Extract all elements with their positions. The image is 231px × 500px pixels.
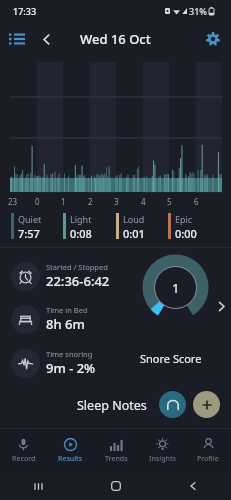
button[interactable]: Results xyxy=(47,429,93,472)
staticText: 17:33 xyxy=(13,5,37,17)
button[interactable]: Profile xyxy=(185,429,231,472)
staticText: 9m - 2% xyxy=(46,359,96,377)
button[interactable]: Started / Stopped xyxy=(11,261,131,291)
staticText: Loud xyxy=(123,213,145,225)
button[interactable]: Snore score 1 xyxy=(142,254,209,321)
staticText: Epic xyxy=(175,213,193,225)
staticText: Record xyxy=(12,454,36,464)
staticText: Quiet xyxy=(18,213,42,225)
staticText: 0 xyxy=(35,196,40,207)
staticText: 8h 6m xyxy=(46,315,85,333)
staticText: Snore Score xyxy=(140,351,202,366)
button[interactable]: Recents xyxy=(0,472,77,500)
button[interactable]: Epic xyxy=(168,213,218,239)
button[interactable]: Settings xyxy=(199,25,227,53)
staticText: 4 xyxy=(141,196,146,207)
staticText: Profile xyxy=(197,454,219,464)
staticText: Started / Stopped xyxy=(46,262,108,272)
button[interactable]: Back xyxy=(33,26,59,52)
button[interactable]: Home xyxy=(77,472,154,500)
staticText: Wed 16 Oct xyxy=(80,30,151,48)
button[interactable]: Snore score details xyxy=(211,296,231,316)
button[interactable]: Time snoring xyxy=(11,348,131,378)
button[interactable]: Record xyxy=(0,429,47,472)
staticText: 1 xyxy=(61,196,66,207)
button[interactable]: Insights xyxy=(139,429,185,472)
staticText: Light xyxy=(70,213,92,225)
staticText: 1 xyxy=(172,279,180,297)
staticText: 23 xyxy=(8,196,18,207)
staticText: Time snoring xyxy=(46,349,93,359)
staticText: 6 xyxy=(194,196,199,207)
staticText: Results xyxy=(58,454,83,464)
staticText: Insights xyxy=(149,454,176,464)
button[interactable]: Add sleep note xyxy=(193,391,220,418)
staticText: 22:36-6:42 xyxy=(46,272,110,290)
button[interactable]: Back xyxy=(154,472,231,500)
button[interactable]: Quiet xyxy=(11,213,61,239)
button[interactable]: Light xyxy=(63,213,113,239)
staticText: Sleep Notes xyxy=(77,397,147,414)
staticText: 3 xyxy=(114,196,119,207)
staticText: 31% xyxy=(189,5,207,17)
staticText: Time in Bed xyxy=(46,305,88,315)
staticText: 0:00 xyxy=(175,226,197,239)
staticText: 0:08 xyxy=(70,226,92,239)
button[interactable]: List of nights xyxy=(3,25,31,53)
button[interactable]: Loud xyxy=(116,213,166,239)
staticText: Trends xyxy=(105,454,128,464)
staticText: 2 xyxy=(88,196,93,207)
button[interactable]: Sleep note xyxy=(159,391,186,418)
staticText: 7:57 xyxy=(18,226,40,239)
staticText: 0:01 xyxy=(123,226,145,239)
button[interactable]: Time in Bed xyxy=(11,304,131,334)
button[interactable]: Trends xyxy=(93,429,139,472)
staticText: 5 xyxy=(167,196,172,207)
